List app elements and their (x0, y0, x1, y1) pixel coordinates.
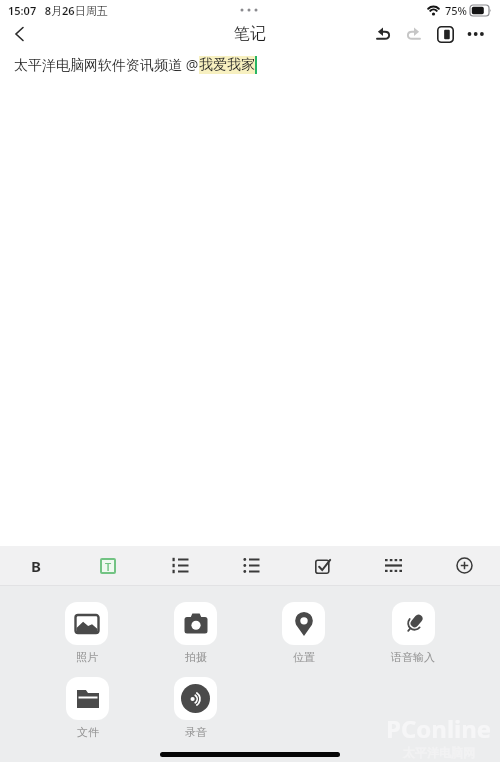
staticText: 75% (445, 3, 467, 18)
staticText: 位置 (293, 650, 315, 664)
staticText: 录音 (185, 725, 207, 739)
staticText: 15:07 8月26日周五 (8, 3, 108, 18)
staticText: 拍摄 (185, 650, 207, 664)
button[interactable] (174, 602, 217, 645)
button[interactable] (6, 21, 32, 47)
staticText: 我爱我家 (199, 56, 255, 74)
button[interactable] (369, 20, 397, 48)
staticText: 笔记 (234, 24, 266, 44)
button[interactable] (287, 546, 358, 585)
button[interactable] (216, 546, 287, 585)
button[interactable] (66, 677, 109, 720)
button[interactable]: B (0, 546, 72, 585)
button[interactable] (400, 20, 428, 48)
staticText: PConline (386, 712, 492, 745)
button[interactable]: T (72, 546, 144, 585)
staticText: 照片 (76, 650, 98, 664)
button[interactable] (358, 546, 429, 585)
button[interactable] (174, 677, 217, 720)
staticText (411, 725, 414, 740)
staticText: T (105, 559, 112, 574)
staticText: 太平洋电脑网软件资讯频道 @ (14, 55, 199, 74)
button[interactable] (431, 20, 459, 48)
button[interactable] (429, 546, 500, 585)
button[interactable] (282, 602, 325, 645)
button[interactable] (462, 20, 490, 48)
staticText: 文件 (77, 725, 99, 739)
staticText: 语音输入 (391, 650, 435, 664)
button[interactable] (392, 602, 435, 645)
staticText: B (31, 556, 41, 576)
button[interactable] (65, 602, 108, 645)
button[interactable] (144, 546, 216, 585)
